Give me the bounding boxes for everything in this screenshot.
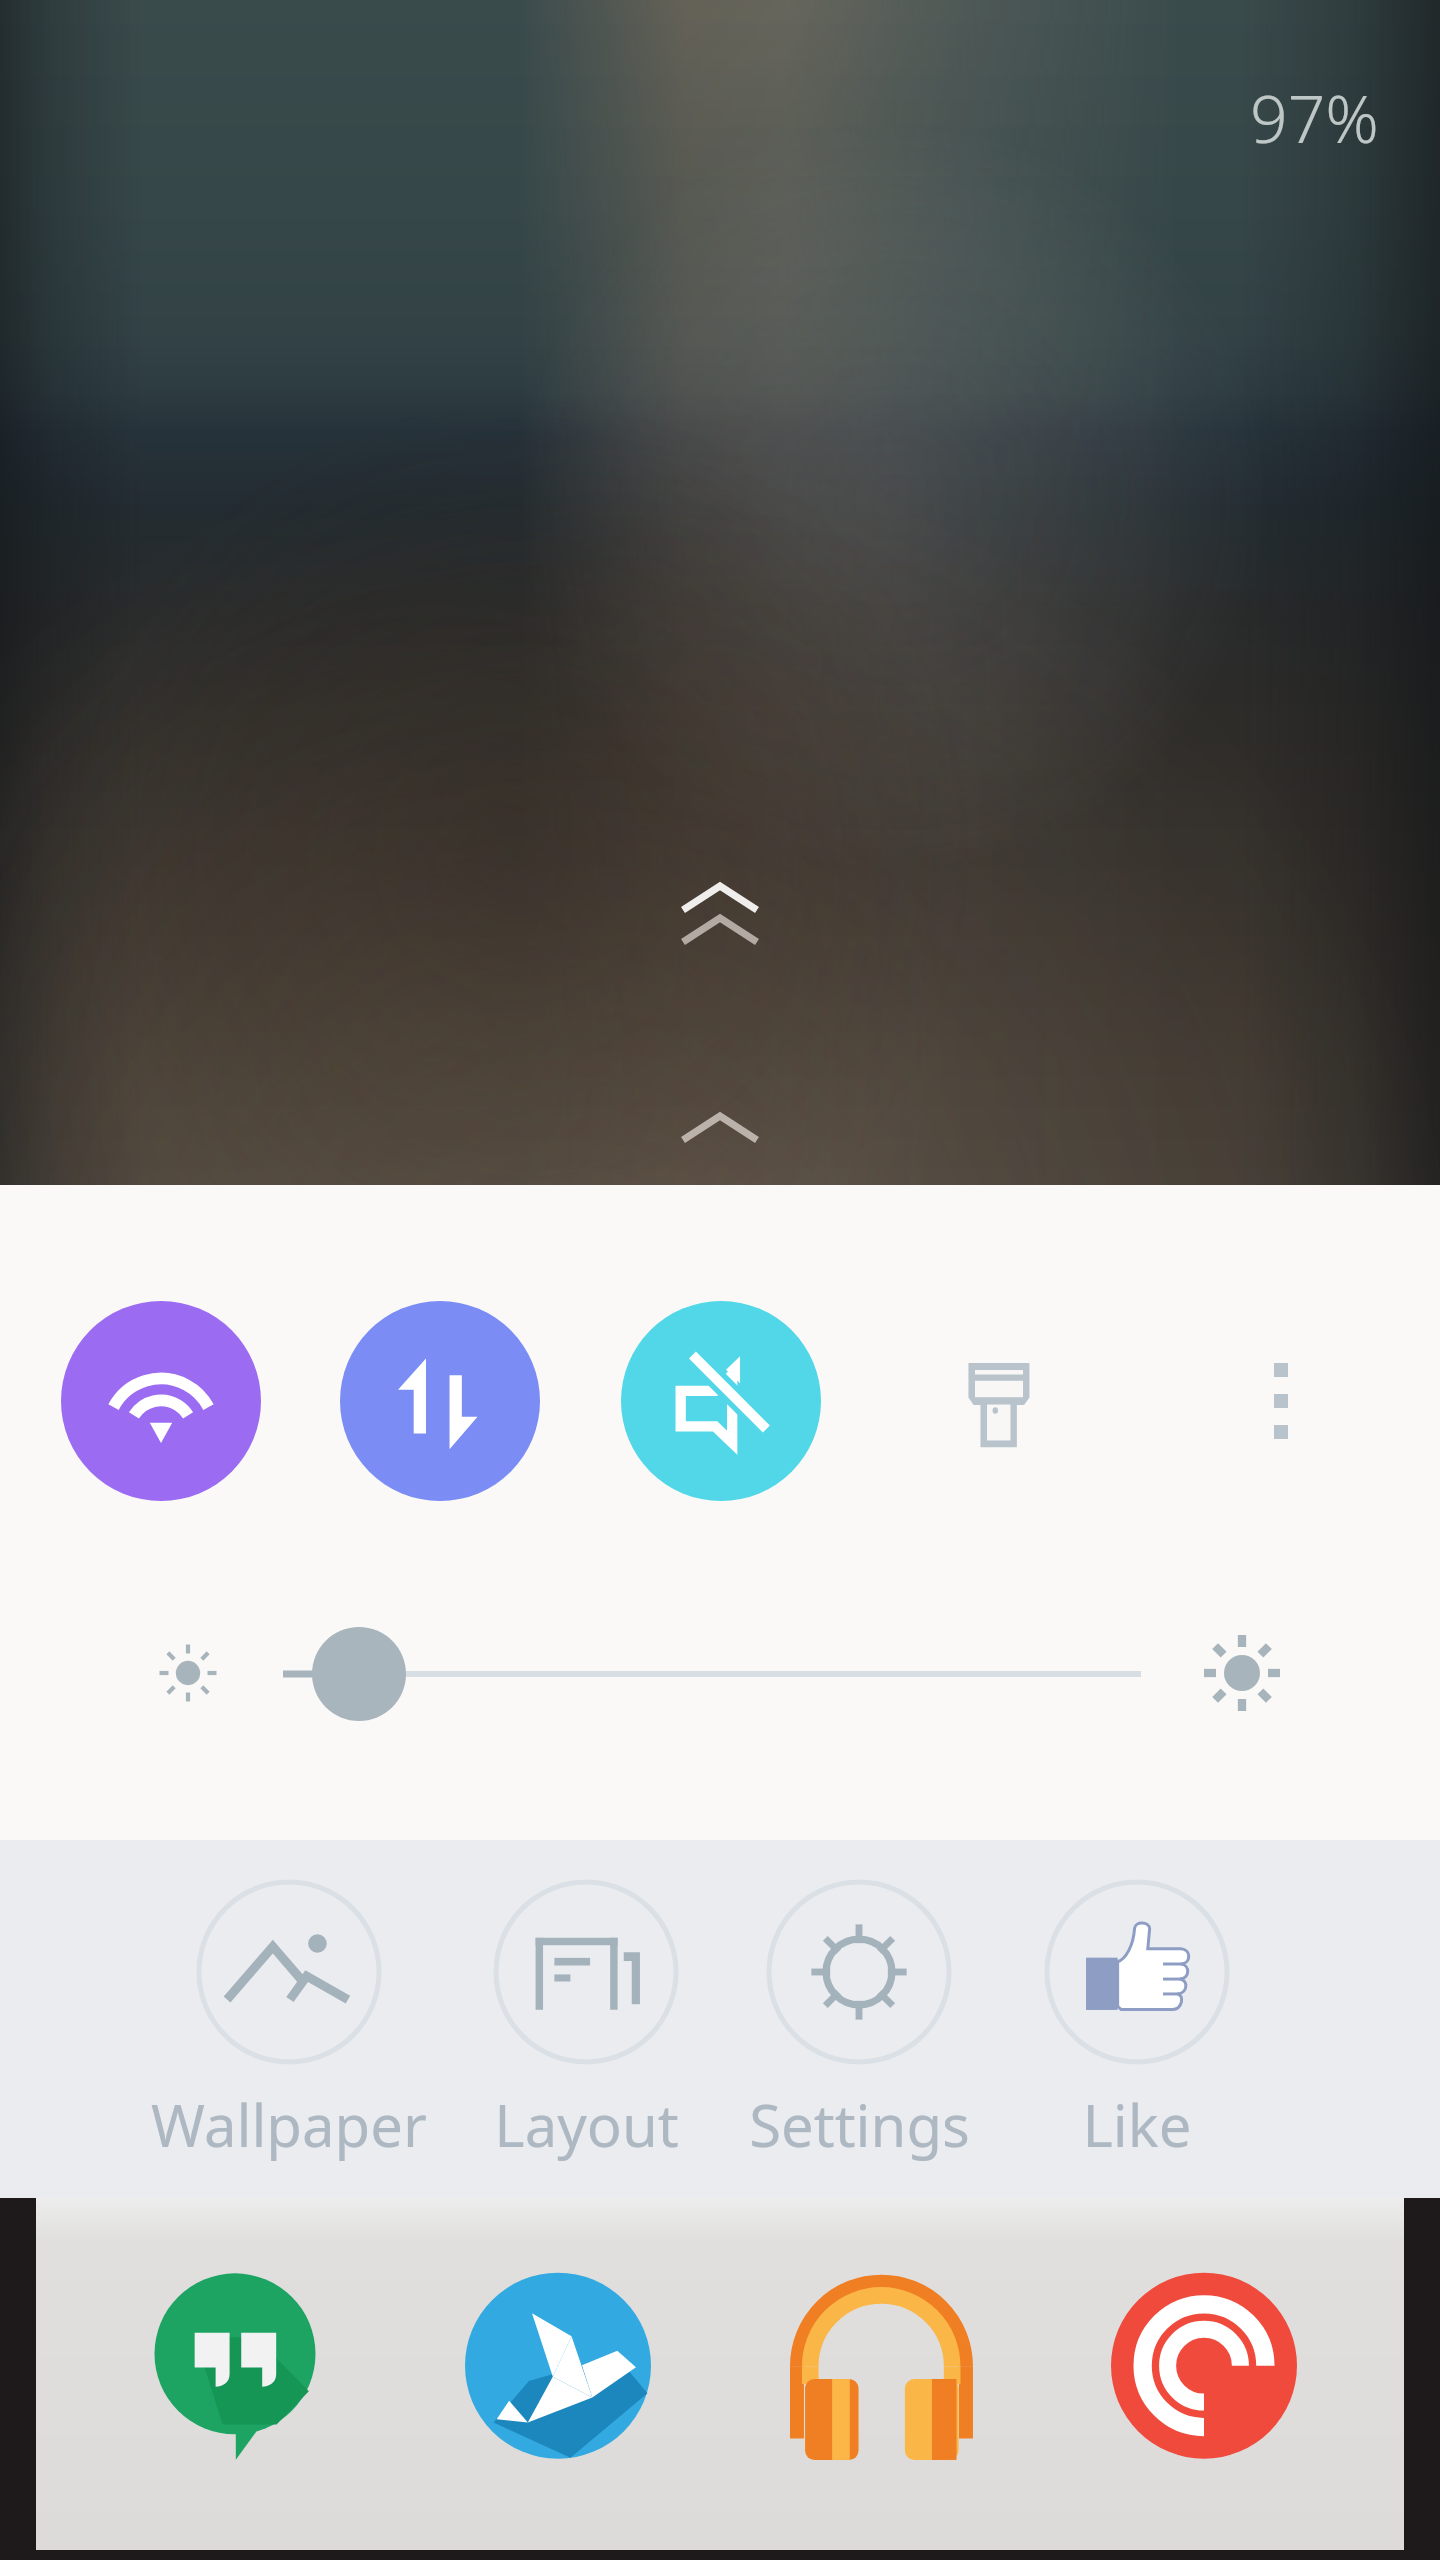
button[interactable]: Pocket Casts	[1099, 2254, 1309, 2484]
button[interactable]: Wallpaper	[149, 1879, 429, 2164]
staticText: Layout	[494, 2085, 679, 2164]
button[interactable]: Falcon Pro	[453, 2254, 663, 2484]
staticText: Like	[1082, 2085, 1192, 2164]
button[interactable]: Settings	[719, 1879, 999, 2164]
button[interactable]: More options	[1181, 1301, 1381, 1501]
staticText: Wallpaper	[151, 2085, 427, 2164]
button[interactable]: Mobile data	[340, 1301, 540, 1501]
button[interactable]: Wi-Fi	[61, 1301, 261, 1501]
staticText: Settings	[749, 2085, 970, 2164]
button[interactable]: Mute	[621, 1301, 821, 1501]
button[interactable]: Layout	[446, 1879, 726, 2164]
button[interactable]: Play Music	[776, 2254, 986, 2484]
button[interactable]: Hangouts	[130, 2254, 340, 2484]
button[interactable]: Flashlight	[901, 1301, 1101, 1501]
button[interactable]: Brightness slider	[312, 1627, 406, 1721]
button[interactable]: Like	[997, 1879, 1277, 2164]
staticText: 97%	[1250, 72, 1379, 162]
